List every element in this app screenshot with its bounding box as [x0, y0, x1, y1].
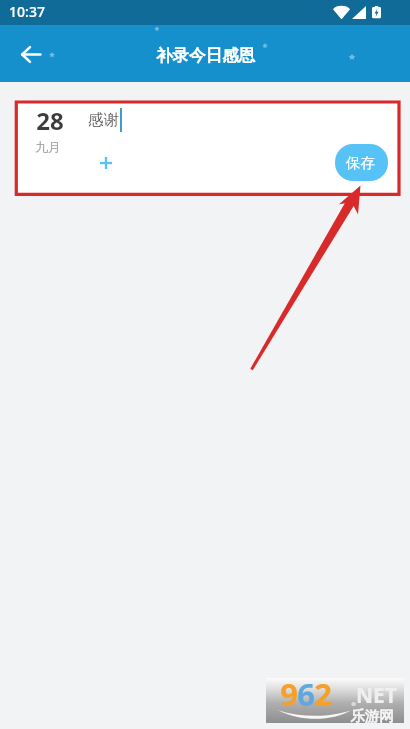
staticText: 28	[36, 104, 64, 137]
button[interactable]: 保存	[335, 144, 388, 181]
button[interactable]: Add gratitude entry	[90, 147, 122, 179]
staticText: 10:37	[9, 2, 45, 21]
staticText: 6	[297, 673, 315, 715]
staticText: 九月	[35, 139, 61, 155]
staticText: .	[350, 680, 357, 713]
staticText: 2	[314, 673, 332, 715]
button[interactable]: Back	[9, 32, 53, 76]
staticText: 补录今日感恩	[156, 45, 255, 66]
staticText: 乐游网	[350, 707, 394, 725]
staticText: 保存	[346, 154, 375, 172]
staticText: 9	[280, 673, 298, 715]
button[interactable]: 28	[27, 103, 79, 159]
staticText: 感谢	[88, 110, 119, 130]
staticText: NET	[356, 681, 397, 710]
button[interactable]: 感谢	[79, 105, 359, 137]
